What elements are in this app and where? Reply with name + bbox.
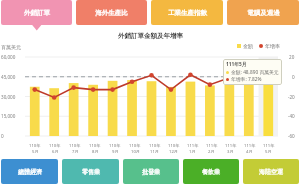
staticText: 工業生產指數 <box>168 9 207 17</box>
button[interactable]: 零售業 <box>62 159 119 184</box>
button[interactable]: 餐飲業 <box>183 159 239 184</box>
staticText: 電腦及週邊 <box>247 9 280 17</box>
staticText: 年增率 <box>265 43 280 49</box>
button[interactable]: 海外生產比 <box>76 0 147 25</box>
staticText: 111年 <box>263 143 275 149</box>
button[interactable]: 外銷訂單 <box>1 0 72 25</box>
staticText: 110年 <box>69 143 81 149</box>
staticText: 2月 <box>208 149 215 155</box>
staticText: 30,000 <box>1 94 16 100</box>
staticText: 111年5月 <box>226 61 247 68</box>
staticText: 零售業 <box>82 168 100 176</box>
staticText: 111年 <box>206 143 218 149</box>
staticText: 外銷訂單 <box>24 9 50 17</box>
staticText: 海外生產比 <box>95 9 128 17</box>
staticText: 4月 <box>246 149 253 155</box>
staticText: 110年 <box>129 143 141 149</box>
staticText: 年增率: 7.82% <box>231 76 262 83</box>
staticText: 9月 <box>112 149 119 155</box>
staticText: 15,000 <box>1 113 16 119</box>
staticText: 110年 <box>168 143 180 149</box>
other: Chart legend <box>237 43 280 49</box>
button[interactable]: 批發業 <box>123 159 179 184</box>
staticText: 金額: 48,890 百萬美元 <box>231 69 279 76</box>
button[interactable]: 總體經濟 <box>1 159 58 184</box>
staticText: 11月 <box>150 149 159 155</box>
staticText: -60 <box>288 133 295 139</box>
staticText: 110年 <box>89 143 101 149</box>
staticText: 111年 <box>225 143 237 149</box>
staticText: 6月 <box>52 149 59 155</box>
staticText: 總體經濟 <box>18 168 42 176</box>
button[interactable]: 海陸空運 <box>243 159 299 184</box>
staticText: 45,000 <box>1 74 16 80</box>
staticText: 111年 <box>187 143 199 149</box>
staticText: 餐飲業 <box>202 168 220 176</box>
staticText: 0 <box>292 74 295 80</box>
staticText: 5月 <box>32 149 39 155</box>
staticText: 111年 <box>244 143 256 149</box>
staticText: 7月 <box>72 149 79 155</box>
staticText: 110年 <box>149 143 161 149</box>
staticText: 外銷訂單金額及年增率 <box>118 32 183 40</box>
staticText: 金額 <box>243 43 253 49</box>
button[interactable]: 工業生產指數 <box>151 0 223 25</box>
staticText: -40 <box>288 113 295 119</box>
staticText: 0 <box>1 133 4 139</box>
staticText: 5月 <box>265 149 272 155</box>
staticText: -20 <box>288 94 295 100</box>
staticText: 批發業 <box>142 168 160 176</box>
staticText: 110年 <box>29 143 41 149</box>
button[interactable]: 電腦及週邊 <box>227 0 299 25</box>
staticText: 12月 <box>169 149 178 155</box>
staticText: 海陸空運 <box>259 168 283 176</box>
staticText: 百萬美元 <box>1 44 21 50</box>
staticText: 1月 <box>189 149 196 155</box>
staticText: 110年 <box>109 143 121 149</box>
staticText: 110年 <box>49 143 61 149</box>
staticText: 60,000 <box>1 54 16 60</box>
staticText: 3月 <box>227 149 234 155</box>
staticText: 20 <box>289 54 295 60</box>
staticText: 10月 <box>131 149 140 155</box>
staticText: 8月 <box>92 149 99 155</box>
